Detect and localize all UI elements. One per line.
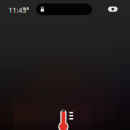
staticText: 11:43: [8, 6, 26, 15]
